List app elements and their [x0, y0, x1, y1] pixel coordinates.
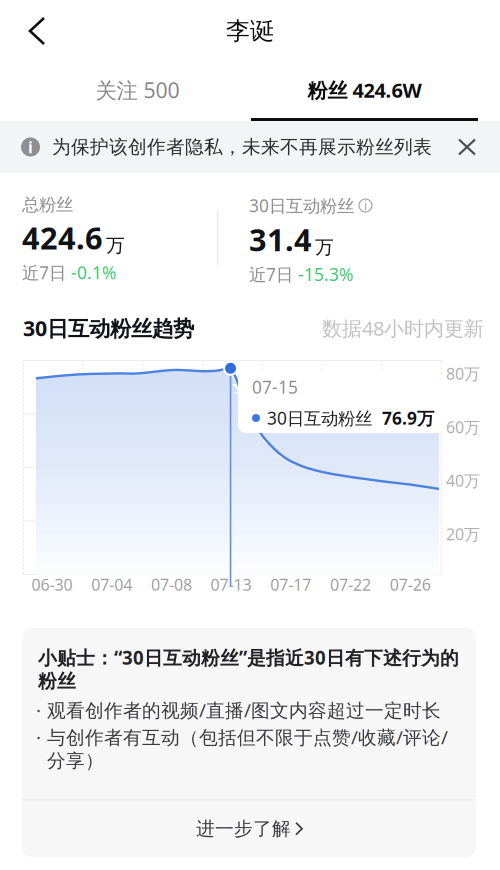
staticText: 07-04 — [91, 574, 132, 595]
staticText: 观看创作者的视频/直播/图文内容超过一定时长 — [47, 698, 441, 722]
staticText: 与创作者有互动（包括但不限于点赞/收藏/评论/分享） — [47, 724, 448, 772]
button[interactable]: 关注 500 — [24, 62, 251, 121]
button[interactable]: 粉丝 424.6W — [251, 62, 478, 121]
button[interactable]: 进一步了解 — [22, 800, 476, 857]
staticText: -0.1% — [71, 261, 116, 284]
button[interactable]: Back — [0, 3, 64, 59]
staticText: 60万 — [446, 416, 480, 438]
staticText: 粉丝 424.6W — [307, 77, 421, 103]
staticText: 06-30 — [31, 574, 72, 595]
staticText: 万 — [315, 236, 334, 259]
staticText: 76.9万 — [382, 406, 434, 429]
staticText: -15.3% — [298, 263, 353, 286]
staticText: 李诞 — [226, 16, 274, 46]
staticText: 30日互动粉丝趋势 — [23, 314, 194, 342]
staticText: 数据48小时内更新 — [322, 315, 484, 341]
staticText: 07-17 — [270, 574, 311, 595]
staticText: 小贴士：“30日互动粉丝”是指近30日有下述行为的粉丝 — [38, 645, 459, 693]
staticText: 万 — [106, 234, 125, 257]
staticText: 31.4 — [249, 219, 312, 260]
staticText: 07-15 — [252, 375, 298, 398]
staticText: 为保护该创作者隐私，未来不再展示粉丝列表 — [52, 135, 432, 158]
staticText: 近7日 — [22, 261, 66, 284]
staticText: 30日互动粉丝 — [249, 194, 354, 217]
staticText: 424.6 — [22, 217, 103, 258]
staticText: 进一步了解 — [196, 817, 291, 840]
staticText: i — [364, 197, 367, 213]
staticText: 30日互动粉丝 — [267, 406, 372, 429]
staticText: · — [36, 698, 41, 722]
button[interactable]: Dismiss — [449, 125, 485, 168]
staticText: 40万 — [446, 470, 480, 491]
staticText: 近7日 — [249, 263, 293, 286]
staticText: 07-22 — [330, 574, 371, 595]
staticText: 07-08 — [151, 574, 192, 595]
staticText: 总粉丝 — [22, 194, 73, 215]
staticText: i — [28, 136, 33, 158]
staticText: 07-13 — [211, 574, 252, 595]
staticText: · — [36, 724, 41, 749]
staticText: 关注 500 — [95, 76, 179, 104]
staticText: 80万 — [446, 363, 480, 384]
staticText: 07-26 — [390, 574, 431, 595]
staticText: 20万 — [446, 523, 480, 545]
